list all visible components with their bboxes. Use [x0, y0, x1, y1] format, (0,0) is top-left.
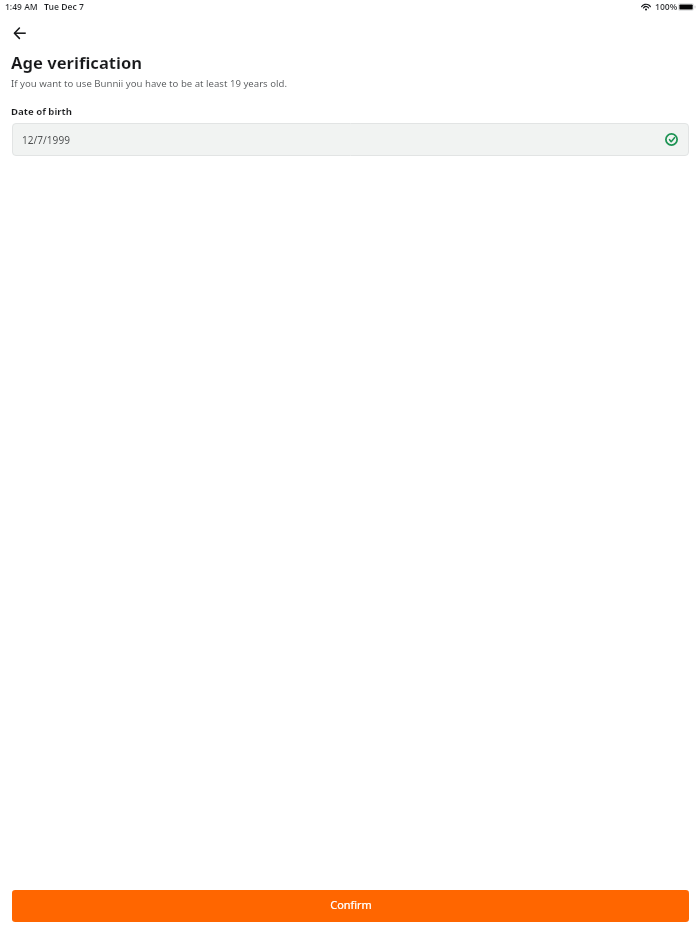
- staticText: If you want to use Bunnii you have to be…: [11, 77, 287, 90]
- button[interactable]: Back: [8, 21, 32, 45]
- staticText: Tue Dec 7: [44, 1, 84, 13]
- staticText: 12/7/1999: [22, 133, 70, 147]
- staticText: Date of birth: [11, 105, 72, 118]
- button[interactable]: Confirm: [12, 890, 689, 922]
- staticText: 1:49 AM: [5, 1, 38, 13]
- button[interactable]: 12/7/1999: [12, 123, 689, 156]
- staticText: Confirm: [330, 897, 372, 912]
- staticText: 100%: [655, 1, 678, 13]
- staticText: Age verification: [11, 51, 143, 74]
